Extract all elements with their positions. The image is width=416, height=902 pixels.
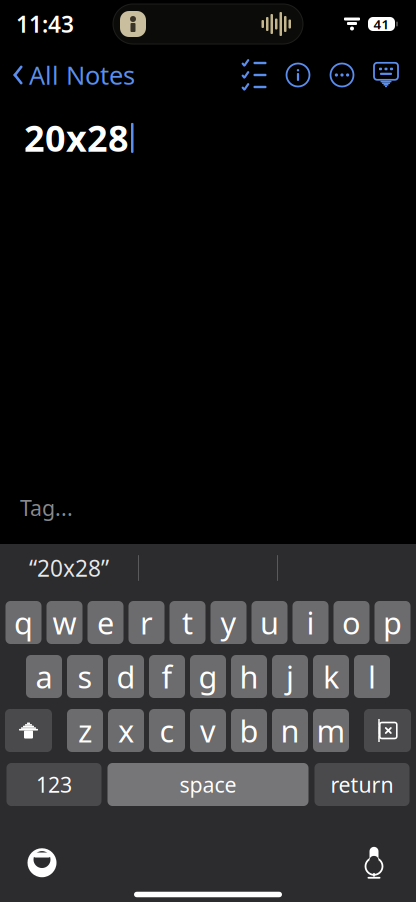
button[interactable]: “20x28” <box>0 546 138 590</box>
button[interactable]: o <box>333 601 369 644</box>
button[interactable]: v <box>190 709 226 752</box>
staticText: v <box>200 710 216 751</box>
button[interactable]: i <box>292 601 328 644</box>
button[interactable]: Checklist <box>232 55 276 95</box>
staticText: All Notes <box>29 58 135 92</box>
staticText: m <box>316 710 345 751</box>
staticText: q <box>14 602 33 643</box>
staticText: u <box>260 602 279 643</box>
button[interactable]: space <box>107 763 308 806</box>
button[interactable]: w <box>46 601 82 644</box>
staticText: p <box>383 602 402 643</box>
staticText: h <box>239 656 258 697</box>
button[interactable]: n <box>272 709 308 752</box>
staticText: g <box>198 656 217 697</box>
staticText: Tag... <box>20 494 73 522</box>
staticText: k <box>323 656 339 697</box>
staticText: t <box>182 602 193 643</box>
staticText: “20x28” <box>29 553 109 583</box>
button[interactable]: j <box>272 655 308 698</box>
button[interactable]: z <box>67 709 103 752</box>
button[interactable]: l <box>354 655 390 698</box>
button[interactable]: m <box>313 709 349 752</box>
staticText: j <box>286 656 294 697</box>
staticText: d <box>116 656 135 697</box>
button[interactable]: p <box>374 601 410 644</box>
staticText: 11:43 <box>16 9 74 39</box>
button[interactable]: u <box>251 601 287 644</box>
button[interactable]: Hide Keyboard <box>364 55 408 95</box>
staticText: y <box>220 602 236 643</box>
staticText: l <box>368 656 376 697</box>
staticText: 20x28 <box>24 114 129 162</box>
button[interactable]: x <box>108 709 144 752</box>
staticText: n <box>280 710 299 751</box>
staticText: a <box>35 656 52 697</box>
button[interactable]: t <box>169 601 205 644</box>
button[interactable]: k <box>313 655 349 698</box>
staticText: w <box>52 602 76 643</box>
button[interactable]: return <box>314 763 409 806</box>
staticText: space <box>179 770 236 799</box>
staticText: f <box>161 656 172 697</box>
staticText: x <box>118 710 134 751</box>
button[interactable]: r <box>128 601 164 644</box>
button[interactable]: f <box>149 655 185 698</box>
staticText: return <box>330 770 393 799</box>
button[interactable]: h <box>231 655 267 698</box>
staticText: r <box>140 602 153 643</box>
staticText: z <box>78 710 92 751</box>
staticText: e <box>97 602 114 643</box>
button[interactable]: s <box>67 655 103 698</box>
staticText: s <box>77 656 92 697</box>
staticText: 41 <box>373 15 389 33</box>
staticText: i <box>306 602 314 643</box>
staticText: b <box>239 710 258 751</box>
button[interactable]: More <box>320 55 364 95</box>
button[interactable]: y <box>210 601 246 644</box>
button[interactable]: All Notes <box>0 50 135 100</box>
button[interactable]: a <box>26 655 62 698</box>
button[interactable]: 123 <box>6 763 101 806</box>
button[interactable]: c <box>149 709 185 752</box>
button[interactable]: q <box>5 601 41 644</box>
button[interactable]: Emoji <box>14 842 70 884</box>
button[interactable]: Dictate <box>346 842 402 884</box>
button[interactable]: e <box>87 601 123 644</box>
button[interactable]: Shift <box>5 709 52 752</box>
button[interactable]: d <box>108 655 144 698</box>
staticText: 123 <box>36 770 72 799</box>
staticText: o <box>342 602 361 643</box>
staticText: c <box>159 710 174 751</box>
button[interactable]: g <box>190 655 226 698</box>
button[interactable]: Info <box>276 55 320 95</box>
button[interactable]: b <box>231 709 267 752</box>
button[interactable]: Delete <box>364 709 411 752</box>
